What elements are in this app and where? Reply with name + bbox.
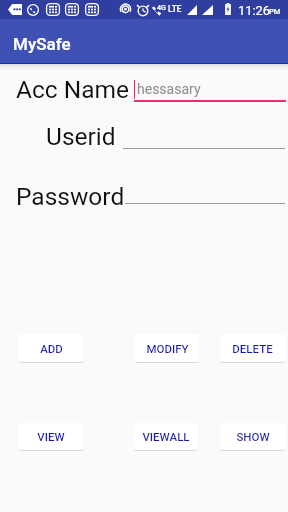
button[interactable]: ADD	[19, 334, 83, 362]
button[interactable]: VIEW	[19, 423, 83, 450]
button[interactable]: MODIFY	[135, 334, 199, 362]
staticText: Password	[16, 182, 125, 211]
staticText: hessasary	[137, 81, 201, 97]
staticText: PM	[269, 7, 281, 16]
staticText: Userid	[46, 122, 116, 151]
button[interactable]: VIEWALL	[134, 423, 197, 450]
staticText: LTE	[168, 4, 182, 14]
staticText: Acc Name	[16, 75, 129, 104]
staticText: 4G	[157, 3, 166, 11]
button[interactable]: DELETE	[220, 334, 285, 362]
staticText: VIEW	[37, 430, 65, 443]
button[interactable]: SHOW	[220, 423, 285, 450]
staticText: DELETE	[232, 342, 273, 355]
staticText: ADD	[40, 342, 63, 355]
staticText: VIEWALL	[142, 430, 190, 443]
staticText: MySafe	[13, 34, 71, 54]
staticText: MODIFY	[146, 342, 189, 355]
staticText: SHOW	[236, 430, 270, 443]
staticText: 11:26	[238, 3, 270, 18]
